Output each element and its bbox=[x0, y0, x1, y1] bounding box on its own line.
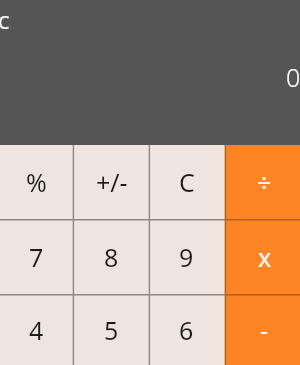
staticText: - bbox=[260, 313, 269, 347]
button[interactable]: Divide bbox=[225, 145, 300, 220]
button[interactable]: Percent bbox=[0, 145, 75, 220]
button[interactable]: Plus minus bbox=[75, 145, 150, 220]
button[interactable]: Multiply bbox=[225, 220, 300, 295]
staticText: 7 bbox=[29, 240, 44, 274]
button[interactable]: 5 bbox=[75, 293, 150, 365]
staticText: +/- bbox=[96, 165, 128, 199]
staticText: C bbox=[0, 10, 10, 35]
button[interactable]: 8 bbox=[75, 220, 150, 295]
staticText: C bbox=[179, 165, 195, 199]
staticText: % bbox=[26, 165, 47, 199]
staticText: 6 bbox=[179, 313, 194, 347]
staticText: 5 bbox=[104, 313, 119, 347]
staticText: 0 bbox=[286, 60, 300, 94]
button[interactable]: 9 bbox=[150, 220, 225, 295]
staticText: ÷ bbox=[257, 165, 272, 199]
staticText: 4 bbox=[29, 313, 44, 347]
button[interactable]: 4 bbox=[0, 293, 75, 365]
staticText: x bbox=[258, 240, 272, 274]
staticText: 8 bbox=[104, 240, 119, 274]
button[interactable]: 6 bbox=[150, 293, 225, 365]
button[interactable]: 7 bbox=[0, 220, 75, 295]
button[interactable]: Clear bbox=[150, 145, 225, 220]
button[interactable]: Subtract bbox=[225, 293, 300, 365]
staticText: 9 bbox=[179, 240, 194, 274]
